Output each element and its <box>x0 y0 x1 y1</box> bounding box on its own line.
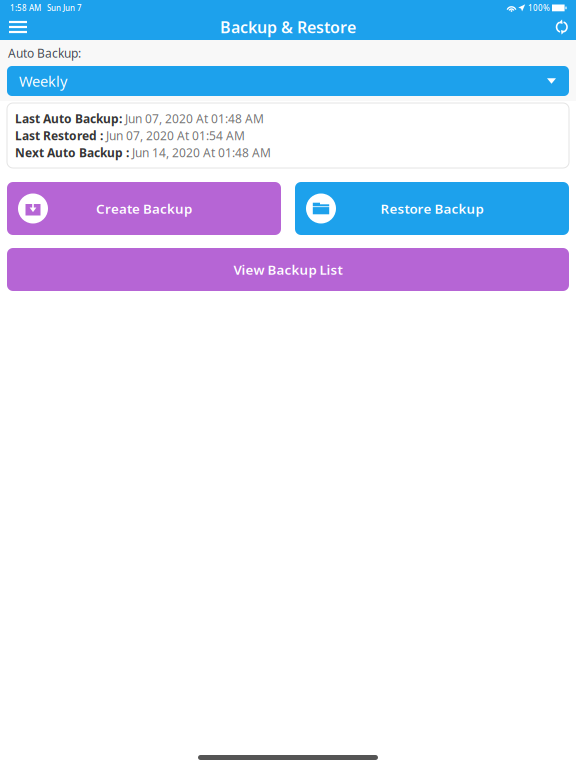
staticText: Backup & Restore <box>220 16 356 38</box>
staticText: Last Restored : <box>15 127 103 143</box>
staticText: Sun Jun 7 <box>47 3 82 13</box>
staticText: Auto Backup: <box>8 45 81 61</box>
staticText: View Backup List <box>233 261 342 278</box>
staticText: Jun 14, 2020 At 01:48 AM <box>132 144 271 160</box>
staticText: Create Backup <box>96 200 192 217</box>
staticText: Jun 07, 2020 At 01:54 AM <box>106 127 245 143</box>
staticText: Weekly <box>19 71 67 91</box>
button[interactable]: Refresh <box>529 15 569 39</box>
staticText: Last Auto Backup: <box>15 110 122 126</box>
button[interactable]: Create Backup <box>7 182 281 235</box>
staticText: Jun 07, 2020 At 01:48 AM <box>125 110 264 126</box>
button[interactable]: Menu <box>9 15 49 39</box>
button[interactable]: View Backup List <box>7 248 569 291</box>
button[interactable]: Weekly <box>7 66 569 96</box>
button[interactable]: Restore Backup <box>295 182 569 235</box>
staticText: Restore Backup <box>380 200 483 217</box>
staticText: 1:58 AM <box>10 3 41 13</box>
staticText: Next Auto Backup : <box>15 144 129 160</box>
staticText: 100% <box>528 3 550 13</box>
